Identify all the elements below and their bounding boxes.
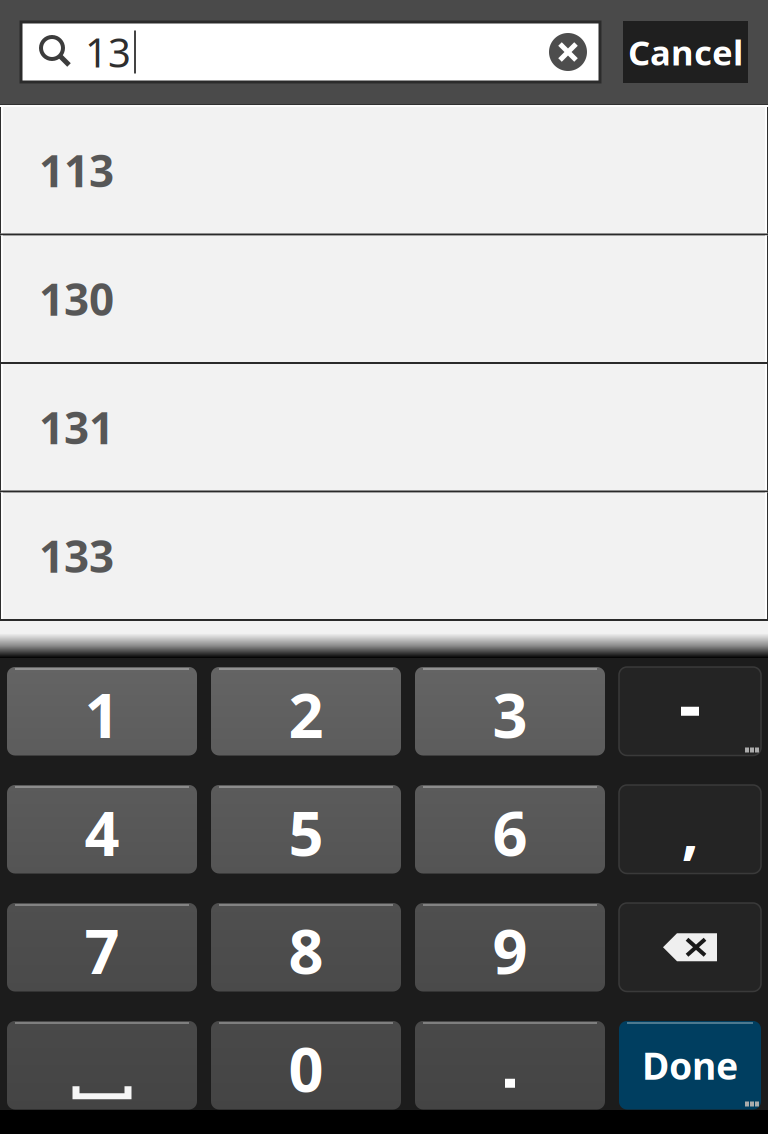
button[interactable]: Decimal point [415,1021,605,1109]
staticText: 3 [492,673,527,755]
button[interactable]: 3 [415,667,605,755]
staticText: 0 [288,1027,323,1109]
staticText: 133 [39,526,114,585]
button[interactable]: 131 [0,364,768,492]
staticText: 6 [492,791,527,873]
button[interactable]: 8 [211,903,401,991]
button[interactable]: Delete [619,903,761,991]
button[interactable]: Space [7,1021,197,1109]
staticText: 13 [85,25,131,78]
staticText: 1 [84,673,119,755]
button[interactable]: Done [619,1021,761,1109]
button[interactable]: Cancel [623,21,748,83]
button[interactable]: 2 [211,667,401,755]
button[interactable]: Minus [619,667,761,755]
staticText: 8 [288,909,323,991]
button[interactable]: 1 [7,667,197,755]
staticText: Cancel [628,29,743,75]
staticText: 131 [39,398,114,456]
staticText: 130 [39,269,114,328]
button[interactable]: 113 [0,107,768,235]
button[interactable]: 4 [7,785,197,873]
button[interactable]: 7 [7,903,197,991]
staticText: 4 [84,791,119,873]
staticText: 7 [84,909,119,991]
button[interactable]: 5 [211,785,401,873]
staticText: 2 [288,673,323,755]
button[interactable]: 9 [415,903,605,991]
button[interactable]: 6 [415,785,605,873]
staticText: Done [642,1040,738,1090]
button[interactable]: Comma [619,785,761,873]
button[interactable]: 133 [0,492,768,621]
staticText: , [681,788,698,870]
button[interactable]: 0 [211,1021,401,1109]
button[interactable]: 130 [0,235,768,364]
staticText: 9 [492,909,527,991]
staticText: 5 [288,791,323,873]
staticText: 113 [39,141,114,199]
